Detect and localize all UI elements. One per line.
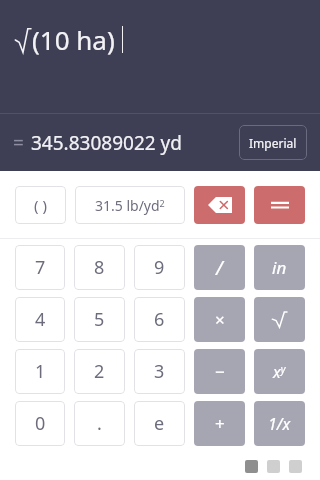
button[interactable]: (10 ha) bbox=[0, 0, 320, 113]
button[interactable]: 5 bbox=[74, 297, 125, 342]
staticText: 31.5 lb/yd2 bbox=[95, 196, 165, 215]
button[interactable]: Imperial bbox=[239, 125, 307, 160]
staticText: ( ) bbox=[34, 195, 47, 215]
staticText: 2 bbox=[94, 359, 105, 384]
staticText: in bbox=[272, 256, 287, 279]
staticText: 6 bbox=[154, 307, 165, 332]
button[interactable]: × bbox=[194, 297, 245, 342]
staticText: 8 bbox=[94, 255, 105, 280]
button[interactable]: Equals bbox=[254, 186, 305, 224]
button[interactable]: − bbox=[194, 349, 245, 394]
button[interactable]: / bbox=[194, 245, 245, 290]
button[interactable]: 3 bbox=[134, 349, 185, 394]
button[interactable]: 31.5 lb/yd2 bbox=[75, 186, 185, 224]
button[interactable]: 6 bbox=[134, 297, 185, 342]
button[interactable]: Page 3 bbox=[289, 460, 302, 473]
staticText: 345.83089022 yd bbox=[31, 130, 182, 156]
staticText: 5 bbox=[94, 307, 105, 332]
button[interactable]: 0 bbox=[15, 401, 65, 446]
staticText: . bbox=[97, 411, 102, 436]
button[interactable] bbox=[254, 297, 305, 342]
button[interactable]: in bbox=[254, 245, 305, 290]
staticText: 1/x bbox=[268, 413, 291, 435]
button[interactable]: ( ) bbox=[15, 186, 66, 224]
staticText: + bbox=[215, 412, 225, 435]
staticText: = bbox=[13, 130, 24, 156]
staticText: 7 bbox=[35, 255, 46, 280]
button[interactable]: xy bbox=[254, 349, 305, 394]
button[interactable]: + bbox=[194, 401, 245, 446]
staticText: − bbox=[215, 360, 225, 383]
staticText: (10 ha) bbox=[32, 22, 115, 57]
button[interactable]: 1/x bbox=[254, 401, 305, 446]
button[interactable]: 7 bbox=[15, 245, 65, 290]
staticText: × bbox=[215, 308, 225, 331]
staticText: Imperial bbox=[249, 135, 297, 151]
staticText: 9 bbox=[154, 255, 165, 280]
staticText: 4 bbox=[35, 307, 46, 332]
button[interactable]: 2 bbox=[74, 349, 125, 394]
button[interactable]: 8 bbox=[74, 245, 125, 290]
button[interactable]: . bbox=[74, 401, 125, 446]
button[interactable]: Backspace bbox=[194, 186, 245, 224]
staticText: 1 bbox=[35, 359, 46, 384]
button[interactable]: 1 bbox=[15, 349, 65, 394]
button[interactable]: 4 bbox=[15, 297, 65, 342]
staticText: 3 bbox=[154, 359, 165, 384]
staticText: 0 bbox=[35, 411, 46, 436]
button[interactable]: e bbox=[134, 401, 185, 446]
staticText: / bbox=[216, 255, 223, 281]
button[interactable]: 9 bbox=[134, 245, 185, 290]
staticText: e bbox=[154, 411, 165, 436]
button[interactable]: Page 1 bbox=[245, 460, 258, 473]
button[interactable]: Page 2 bbox=[267, 460, 280, 473]
staticText: xy bbox=[273, 361, 286, 383]
